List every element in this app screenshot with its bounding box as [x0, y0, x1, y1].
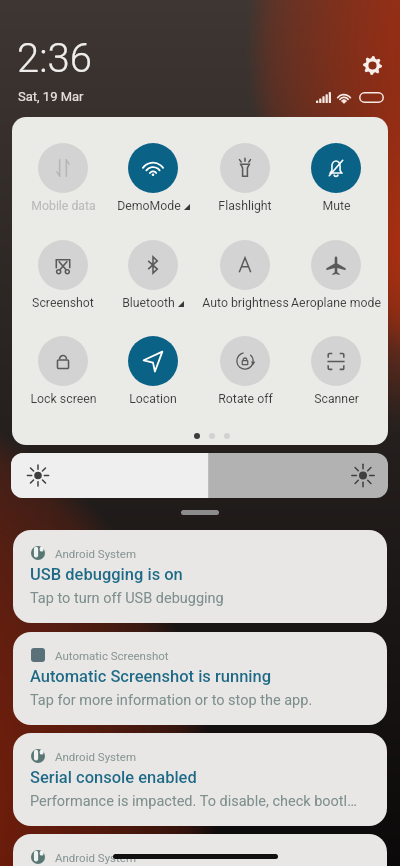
button[interactable]: Flashlight: [198, 143, 292, 221]
staticText: Mute: [322, 199, 351, 213]
staticText: Android System: [55, 547, 136, 560]
button[interactable]: Rotate off: [198, 336, 292, 414]
staticText: Location: [129, 392, 177, 406]
staticText: USB debugging is on: [30, 565, 183, 584]
staticText: Auto brightness: [202, 296, 289, 310]
staticText: Flashlight: [218, 199, 272, 213]
staticText: Scanner: [314, 392, 359, 406]
button[interactable]: Bluetooth: [106, 240, 200, 318]
button[interactable]: Android System: [13, 733, 387, 826]
staticText: Screenshot: [32, 296, 94, 310]
staticText: Rotate off: [218, 392, 273, 406]
staticText: Tap for more information or to stop the …: [30, 692, 313, 709]
button[interactable]: Automatic Screenshot: [13, 632, 387, 725]
button[interactable]: Mute: [289, 143, 383, 221]
staticText: Automatic Screenshot: [55, 649, 169, 662]
button[interactable]: Location: [106, 336, 200, 414]
staticText: DemoMode: [117, 199, 181, 213]
button[interactable]: DemoMode: [106, 143, 200, 221]
staticText: Automatic Screenshot is running: [30, 667, 272, 686]
button[interactable]: Android System: [13, 530, 387, 623]
staticText: Aeroplane mode: [291, 296, 381, 310]
staticText: Android System: [55, 851, 136, 864]
staticText: Performance is impacted. To disable, che…: [30, 793, 357, 810]
staticText: Sat, 19 Mar: [18, 89, 84, 104]
button[interactable]: Android System: [13, 834, 387, 866]
staticText: Bluetooth: [122, 296, 175, 310]
staticText: Serial console enabled: [30, 768, 197, 787]
staticText: Tap to turn off USB debugging: [30, 590, 224, 607]
button[interactable]: Scanner: [289, 336, 383, 414]
staticText: Mobile data: [31, 199, 96, 213]
staticText: 2:36: [17, 35, 92, 82]
button[interactable]: Mobile data: [16, 143, 110, 221]
button[interactable]: Brightness: [11, 453, 388, 498]
staticText: Android System: [55, 750, 136, 763]
button[interactable]: Settings: [359, 52, 385, 78]
button[interactable]: Lock screen: [16, 336, 110, 414]
button[interactable]: Aeroplane mode: [289, 240, 383, 318]
button[interactable]: Screenshot: [16, 240, 110, 318]
staticText: Lock screen: [30, 392, 97, 406]
button[interactable]: Auto brightness: [198, 240, 292, 318]
